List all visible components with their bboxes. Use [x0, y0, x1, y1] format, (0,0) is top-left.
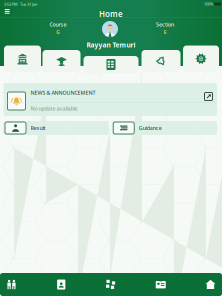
staticText: No update available	[30, 105, 77, 112]
staticText: 3:53 PM Tue 31 Jan	[4, 2, 37, 7]
staticText: Course	[49, 21, 66, 28]
button[interactable]: Students	[6, 279, 17, 290]
button[interactable]: Quick action	[141, 50, 180, 72]
staticText: Result	[30, 124, 45, 132]
button[interactable]: Quick action	[42, 50, 80, 72]
staticText: Home	[99, 9, 123, 19]
staticText: G	[56, 28, 60, 36]
button[interactable]: Menu	[2, 6, 12, 16]
button[interactable]: Badge	[155, 279, 166, 290]
button[interactable]: Home	[205, 279, 216, 290]
button[interactable]: Apps	[105, 279, 116, 290]
button[interactable]: Quick action	[83, 56, 138, 73]
button[interactable]: Quick action	[183, 45, 219, 72]
button[interactable]: Result	[3, 121, 109, 135]
button[interactable]: Profile	[56, 279, 67, 290]
button[interactable]: News and announcement	[3, 83, 217, 116]
staticText: Rayyan Temuri	[86, 40, 135, 49]
staticText: Guidance	[139, 124, 162, 132]
staticText: NEWS & ANNOUNCEMENT	[30, 89, 95, 96]
button[interactable]: Quick action	[4, 45, 41, 72]
staticText: E	[163, 28, 166, 36]
staticText: 100%	[204, 1, 213, 7]
staticText: Section	[156, 21, 174, 28]
button[interactable]: Guidance	[112, 121, 217, 135]
